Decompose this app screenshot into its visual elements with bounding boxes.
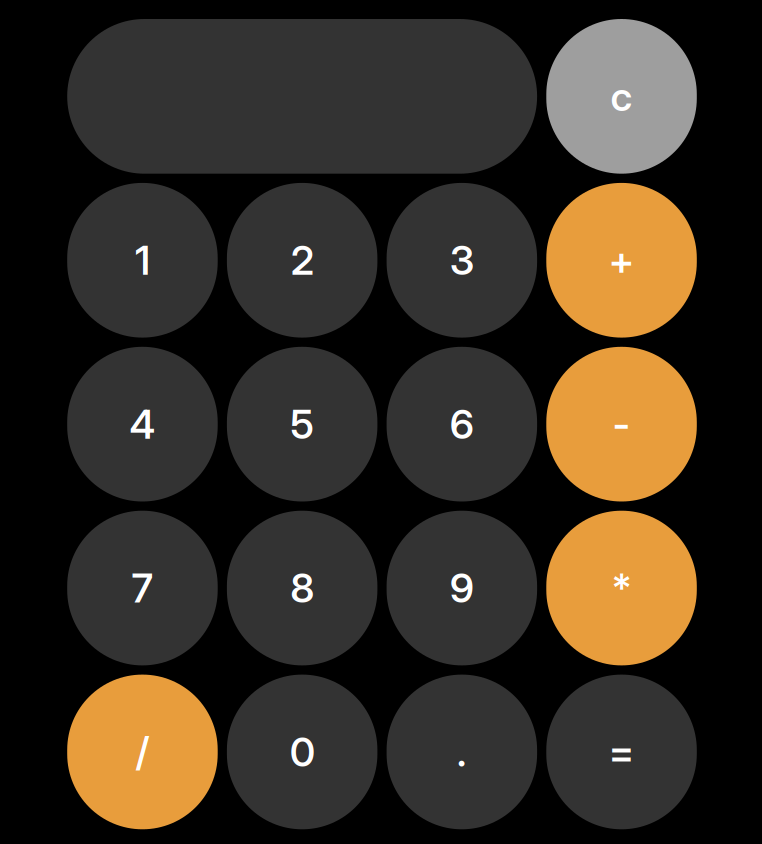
- button[interactable]: 8: [227, 511, 377, 665]
- button[interactable]: 0: [227, 675, 377, 829]
- button[interactable]: Decimal point: [387, 675, 537, 829]
- staticText: /: [135, 728, 149, 776]
- staticText: -: [612, 400, 630, 448]
- staticText: 3: [450, 236, 474, 284]
- button[interactable]: Clear: [546, 19, 697, 174]
- button[interactable]: Add: [546, 183, 697, 338]
- button[interactable]: Equals: [546, 675, 697, 829]
- staticText: 9: [450, 564, 474, 612]
- staticText: =: [608, 728, 634, 776]
- button[interactable]: 7: [67, 511, 218, 665]
- button[interactable]: 2: [227, 183, 377, 338]
- staticText: *: [611, 564, 631, 612]
- button[interactable]: 4: [67, 347, 218, 501]
- staticText: 7: [131, 564, 153, 612]
- staticText: c: [610, 72, 632, 121]
- button[interactable]: 1: [67, 183, 218, 338]
- button[interactable]: Subtract: [546, 347, 697, 501]
- button[interactable]: 9: [387, 511, 537, 665]
- staticText: +: [608, 236, 634, 284]
- staticText: 2: [291, 236, 314, 284]
- staticText: 4: [129, 400, 155, 448]
- button[interactable]: 6: [387, 347, 537, 501]
- staticText: 5: [290, 400, 314, 448]
- staticText: 6: [450, 400, 474, 448]
- staticText: 0: [290, 728, 315, 776]
- staticText: 8: [290, 564, 314, 612]
- staticText: 1: [135, 236, 150, 284]
- staticText: .: [457, 728, 467, 776]
- button[interactable]: 5: [227, 347, 377, 501]
- button[interactable]: Divide: [67, 675, 218, 829]
- button[interactable]: Multiply: [546, 511, 697, 665]
- button[interactable]: 3: [387, 183, 537, 338]
